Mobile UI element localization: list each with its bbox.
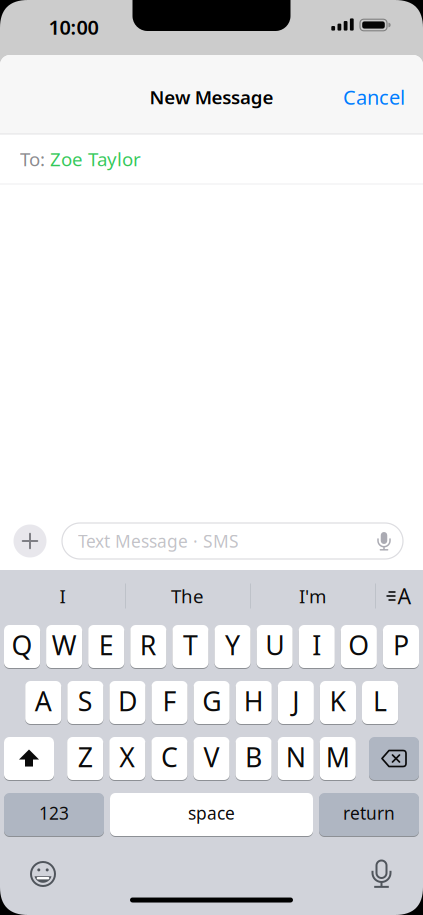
staticText: F bbox=[163, 683, 177, 719]
staticText: return bbox=[343, 801, 395, 824]
button[interactable]: O bbox=[341, 624, 377, 668]
button[interactable]: The bbox=[127, 572, 247, 620]
button[interactable]: return bbox=[319, 792, 419, 836]
button[interactable]: Emoji bbox=[30, 861, 56, 887]
staticText: Q bbox=[12, 627, 33, 663]
staticText: I'm bbox=[299, 584, 326, 608]
button[interactable]: Y bbox=[214, 624, 251, 668]
staticText: H bbox=[244, 683, 264, 719]
button[interactable]: M bbox=[320, 736, 356, 780]
staticText: To: bbox=[20, 147, 45, 171]
staticText: The bbox=[171, 584, 204, 608]
staticText: 10:00 bbox=[48, 14, 98, 40]
staticText: T bbox=[183, 627, 198, 663]
staticText: M bbox=[326, 739, 350, 775]
button[interactable]: R bbox=[130, 624, 166, 668]
staticText: I bbox=[312, 627, 321, 663]
button[interactable]: X bbox=[109, 736, 145, 780]
staticText: D bbox=[118, 683, 137, 719]
staticText: J bbox=[292, 683, 299, 719]
staticText: B bbox=[245, 739, 262, 775]
button[interactable]: A bbox=[25, 680, 61, 724]
button[interactable]: E bbox=[88, 624, 124, 668]
staticText: I bbox=[59, 584, 65, 608]
button[interactable]: W bbox=[46, 624, 82, 668]
button[interactable]: I'm bbox=[252, 572, 372, 620]
button[interactable]: S bbox=[67, 680, 103, 724]
button[interactable]: Delete bbox=[369, 736, 419, 780]
button[interactable]: C bbox=[151, 736, 187, 780]
button[interactable]: To: bbox=[0, 134, 423, 184]
staticText: A bbox=[397, 582, 411, 610]
staticText: P bbox=[393, 627, 409, 663]
button[interactable]: T bbox=[172, 624, 208, 668]
staticText: C bbox=[161, 739, 178, 775]
button[interactable]: L bbox=[362, 680, 398, 724]
staticText: A bbox=[35, 683, 52, 719]
button[interactable]: 123 bbox=[4, 792, 104, 836]
button[interactable]: Text Message SMS input field bbox=[62, 523, 403, 559]
staticText: V bbox=[203, 739, 219, 775]
button[interactable]: F bbox=[151, 680, 188, 724]
staticText: U bbox=[265, 627, 284, 663]
button[interactable]: Cancel bbox=[343, 84, 405, 110]
button[interactable]: Shift bbox=[4, 736, 54, 780]
staticText: Text Message · SMS bbox=[78, 529, 239, 552]
button[interactable]: space bbox=[110, 792, 313, 836]
staticText: X bbox=[119, 739, 135, 775]
staticText: Zoe Taylor bbox=[50, 147, 141, 171]
button[interactable]: U bbox=[257, 624, 293, 668]
staticText: S bbox=[78, 683, 93, 719]
staticText: space bbox=[188, 801, 235, 824]
button[interactable]: Hide predictions bbox=[379, 572, 419, 620]
staticText: 123 bbox=[39, 801, 69, 824]
button[interactable]: G bbox=[194, 680, 230, 724]
staticText: R bbox=[140, 627, 157, 663]
button[interactable]: D bbox=[109, 680, 145, 724]
staticText: Cancel bbox=[343, 84, 405, 110]
button[interactable]: J bbox=[278, 680, 314, 724]
staticText: O bbox=[348, 627, 369, 663]
button[interactable]: N bbox=[278, 736, 314, 780]
button[interactable]: B bbox=[236, 736, 272, 780]
staticText: K bbox=[329, 683, 346, 719]
button[interactable]: V bbox=[193, 736, 229, 780]
button[interactable]: P bbox=[383, 624, 419, 668]
staticText: Z bbox=[78, 739, 93, 775]
button[interactable]: I bbox=[2, 572, 122, 620]
button[interactable]: Z bbox=[67, 736, 103, 780]
button[interactable]: Add attachment bbox=[13, 524, 46, 557]
button[interactable]: Dictation bbox=[372, 860, 391, 888]
staticText: W bbox=[52, 627, 77, 663]
staticText: New Message bbox=[149, 85, 273, 109]
staticText: L bbox=[373, 683, 387, 719]
staticText: G bbox=[202, 683, 221, 719]
button[interactable]: Q bbox=[4, 624, 40, 668]
staticText: E bbox=[99, 627, 114, 663]
button[interactable]: I bbox=[299, 624, 335, 668]
staticText: N bbox=[286, 739, 306, 775]
button[interactable]: K bbox=[320, 680, 356, 724]
button[interactable]: H bbox=[236, 680, 272, 724]
staticText: Y bbox=[225, 627, 240, 663]
